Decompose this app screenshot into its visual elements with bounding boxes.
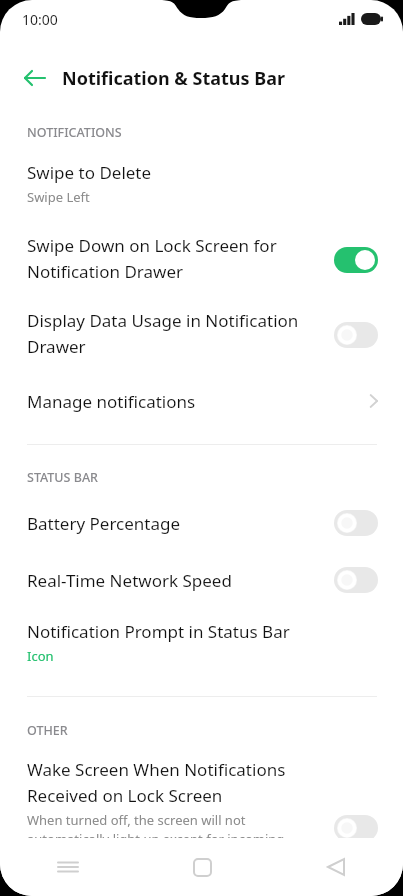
button[interactable]: Manage notifications [0,378,403,424]
staticText: Icon [27,647,54,665]
staticText: OTHER [27,722,68,739]
button[interactable]: Toggle off [334,510,378,536]
button[interactable]: Toggle off [334,815,378,841]
button[interactable]: Toggle on [334,247,378,273]
staticText: STATUS BAR [27,469,98,486]
staticText: Swipe to Delete [27,161,152,184]
button[interactable]: Wake Screen When Notifications Received … [0,750,403,850]
staticText: Manage notifications [27,390,196,413]
staticText: Notification Prompt in Status Bar [27,620,290,643]
button[interactable]: Swipe to Delete [0,155,403,213]
staticText: Swipe Down on Lock Screen for Notificati… [27,234,307,283]
button[interactable]: Back [269,838,403,896]
button[interactable]: Home [135,838,269,896]
staticText: Real-Time Network Speed [27,569,232,592]
button[interactable]: Swipe Down on Lock Screen for Notificati… [0,228,403,290]
staticText: Wake Screen When Notifications Received … [27,758,317,807]
button[interactable]: Toggle off [334,567,378,593]
staticText: Display Data Usage in Notification Drawe… [27,309,317,358]
button[interactable]: Display Data Usage in Notification Drawe… [0,303,403,365]
button[interactable]: Real-Time Network Speed [0,557,403,603]
staticText: Swipe Left [27,188,90,206]
staticText: 10:00 [22,10,58,29]
button[interactable]: Notification Prompt in Status Bar [0,614,403,672]
button[interactable]: Battery Percentage [0,500,403,546]
staticText: NOTIFICATIONS [27,124,122,141]
staticText: Notification & Status Bar [62,66,286,91]
staticText: Battery Percentage [27,512,181,535]
button[interactable]: Recent apps [0,838,135,896]
staticText: When turned off, the screen will not aut… [27,811,317,848]
button[interactable]: Toggle off [334,322,378,348]
button[interactable]: Back [14,58,54,98]
